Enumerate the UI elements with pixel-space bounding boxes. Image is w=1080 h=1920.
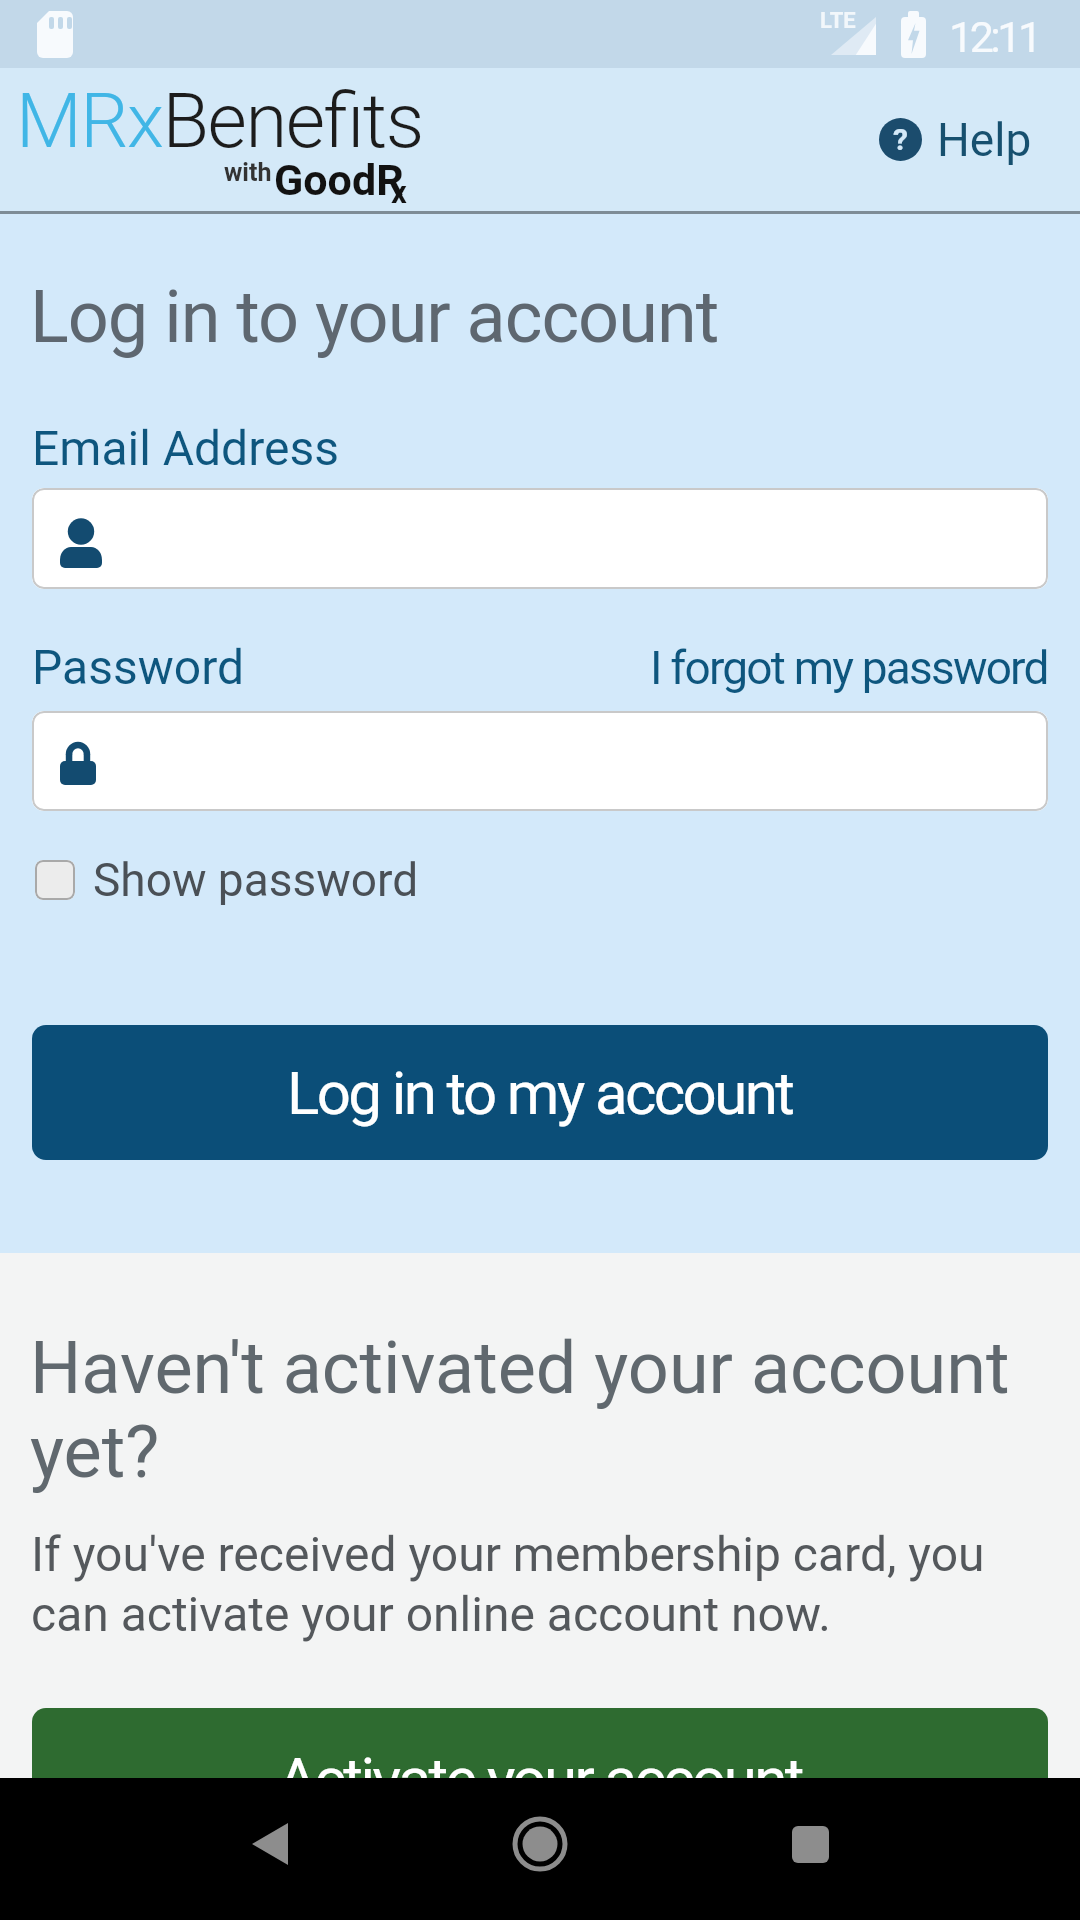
- staticText: LTE: [820, 8, 856, 34]
- button[interactable]: Activate your account: [32, 1708, 1048, 1778]
- staticText: Help: [937, 113, 1032, 167]
- button[interactable]: [32, 711, 1048, 811]
- staticText: If you've received your membership card,…: [31, 1526, 985, 1642]
- staticText: Email Address: [32, 420, 340, 476]
- staticText: GoodR: [274, 155, 404, 205]
- button[interactable]: Log in to my account: [32, 1025, 1048, 1160]
- button[interactable]: I forgot my password: [650, 641, 1048, 695]
- button[interactable]: [32, 488, 1048, 589]
- staticText: MRxBenefits: [16, 76, 423, 165]
- staticText: Show password: [93, 853, 419, 907]
- button[interactable]: [762, 1796, 858, 1892]
- staticText: I forgot my password: [650, 641, 1048, 695]
- staticText: with: [224, 158, 272, 187]
- staticText: Log in to my account: [287, 1058, 793, 1128]
- staticText: Log in to your account: [30, 275, 719, 359]
- button[interactable]: Show password: [35, 853, 419, 907]
- staticText: x: [391, 174, 407, 210]
- button[interactable]: [492, 1796, 588, 1892]
- staticText: Password: [32, 639, 245, 695]
- staticText: Haven't activated your account yet?: [30, 1326, 1010, 1494]
- staticText: ?: [893, 122, 908, 157]
- button[interactable]: ?: [879, 68, 1032, 211]
- staticText: Activate your account: [278, 1744, 802, 1778]
- button[interactable]: [222, 1796, 318, 1892]
- staticText: 12:11: [949, 12, 1039, 62]
